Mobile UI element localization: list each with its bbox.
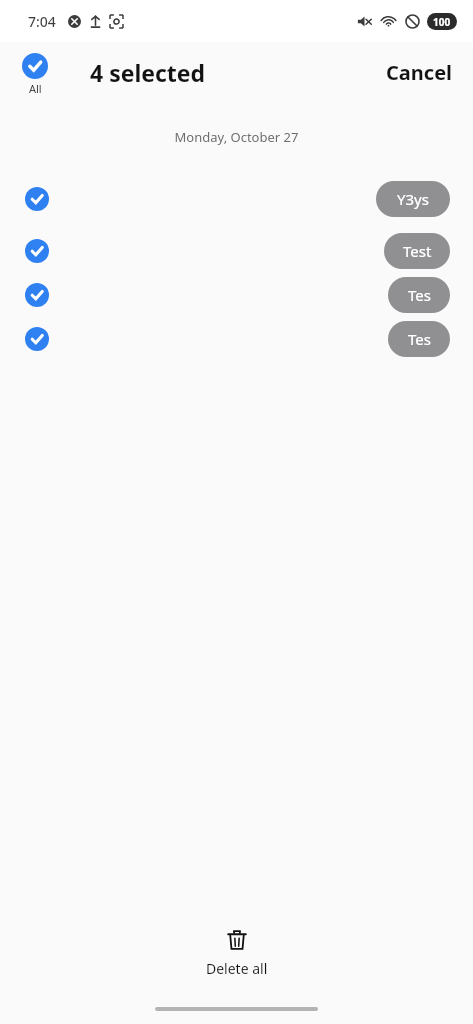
button[interactable]: Selected [0, 168, 473, 229]
button[interactable]: Selected [0, 229, 473, 273]
staticText: Monday, October 27 [0, 128, 473, 146]
other: Selected [25, 239, 49, 263]
button[interactable]: Selected [0, 273, 473, 317]
staticText: 7:04 [28, 12, 56, 31]
button[interactable]: Selected [0, 317, 473, 361]
other: Delete all [225, 928, 249, 952]
staticText: Test [403, 241, 432, 261]
button[interactable]: All [16, 51, 54, 98]
other: Selected [25, 283, 49, 307]
button[interactable]: Delete all [192, 924, 282, 982]
staticText: 100 [433, 15, 451, 29]
staticText: All [29, 81, 42, 96]
button[interactable]: Cancel [376, 53, 463, 96]
staticText: Tes [408, 285, 431, 305]
other: Selected [25, 187, 49, 211]
staticText: Y3ys [397, 189, 429, 209]
staticText: Cancel [386, 59, 453, 86]
staticText: Tes [408, 329, 431, 349]
staticText: 4 selected [90, 57, 206, 88]
staticText: Delete all [206, 959, 268, 978]
other: Selected [25, 327, 49, 351]
